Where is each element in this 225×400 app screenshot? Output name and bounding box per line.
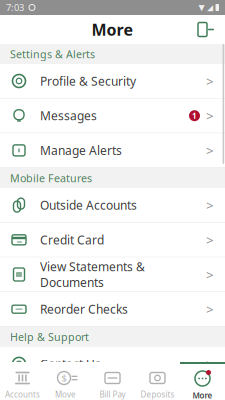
- button[interactable]: $: [45, 362, 90, 400]
- button[interactable]: Bill Pay: [90, 362, 135, 400]
- button[interactable]: Reorder Checks: [0, 292, 225, 327]
- staticText: Manage Alerts: [40, 142, 122, 158]
- button[interactable]: Accounts: [0, 362, 45, 400]
- staticText: Profile & Security: [40, 73, 136, 89]
- staticText: >: [206, 72, 214, 90]
- staticText: Bill Pay: [99, 389, 125, 400]
- staticText: $: [61, 372, 66, 384]
- staticText: >: [206, 141, 214, 159]
- staticText: Move Money: [55, 389, 80, 400]
- staticText: More: [91, 19, 133, 40]
- staticText: View Statements & Documents: [40, 259, 145, 290]
- staticText: >: [206, 231, 214, 249]
- staticText: Reorder Checks: [40, 301, 128, 317]
- staticText: Messages: [40, 108, 97, 124]
- staticText: ◢: [207, 3, 213, 12]
- button[interactable]: Deposits: [135, 362, 180, 400]
- button[interactable]: Manage Alerts: [0, 133, 225, 168]
- staticText: 1: [192, 110, 197, 121]
- staticText: Credit Card: [40, 232, 104, 248]
- staticText: Mobile Features: [10, 171, 92, 185]
- staticText: >: [206, 107, 214, 124]
- button[interactable]: Outside Accounts: [0, 188, 225, 223]
- staticText: Accounts: [5, 389, 40, 400]
- staticText: Settings & Alerts: [10, 47, 95, 61]
- staticText: >: [206, 196, 214, 214]
- button[interactable]: Sign out: [197, 17, 225, 41]
- staticText: Help & Support: [10, 330, 89, 344]
- staticText: 7:03: [6, 1, 24, 14]
- button[interactable]: Messages: [0, 99, 225, 133]
- staticText: Deposits: [140, 389, 174, 400]
- button[interactable]: Contact Us: [0, 347, 225, 382]
- staticText: >: [206, 266, 214, 283]
- staticText: Outside Accounts: [40, 197, 137, 213]
- staticText: Contact Us: [40, 356, 101, 372]
- staticText: >: [206, 355, 214, 373]
- button[interactable]: View Statements & Documents: [0, 257, 225, 292]
- staticText: More: [192, 390, 212, 400]
- staticText: >: [206, 300, 214, 318]
- staticText: ▼: [198, 3, 204, 12]
- button[interactable]: Profile & Security: [0, 64, 225, 99]
- button[interactable]: Credit Card: [0, 223, 225, 257]
- button[interactable]: More: [180, 362, 225, 400]
